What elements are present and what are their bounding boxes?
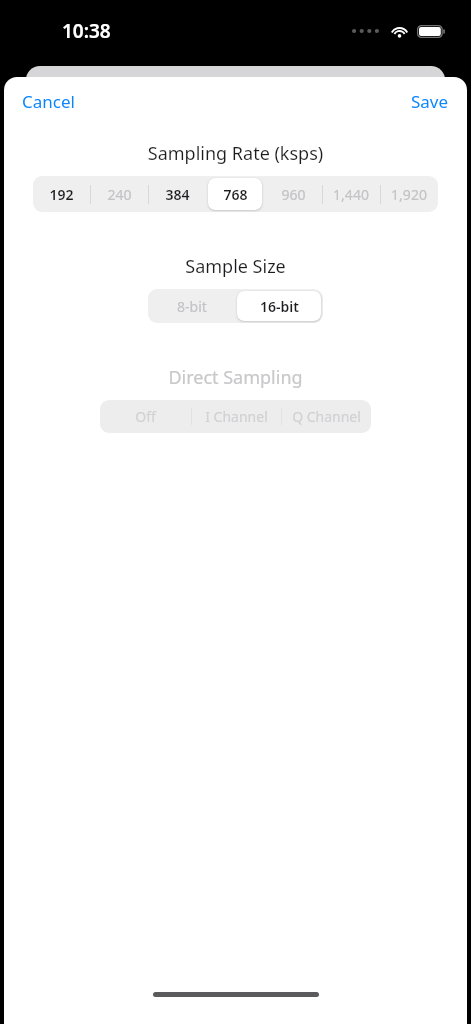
staticText: 960 <box>281 185 306 204</box>
button[interactable]: 384 <box>148 176 206 212</box>
staticText: 10:38 <box>62 18 111 44</box>
button: Q Channel <box>281 400 371 433</box>
staticText: 240 <box>107 185 132 204</box>
button: 1,440 <box>322 176 380 212</box>
staticText: Direct Sampling <box>4 365 467 390</box>
staticText: 1,440 <box>333 185 369 204</box>
staticText: 1,920 <box>391 185 427 204</box>
button[interactable]: Save <box>393 82 467 121</box>
staticText: Save <box>411 90 449 113</box>
staticText: 192 <box>49 185 74 204</box>
staticText: 768 <box>223 185 248 204</box>
button[interactable]: 768 <box>206 176 264 212</box>
staticText: I Channel <box>205 407 268 426</box>
button: 240 <box>90 176 148 212</box>
button: 8-bit <box>148 289 235 323</box>
button[interactable]: Cancel <box>4 82 93 121</box>
staticText: Sampling Rate (ksps) <box>4 141 467 166</box>
button[interactable]: 192 <box>33 176 90 212</box>
staticText: Q Channel <box>292 407 361 426</box>
button: Off <box>100 400 191 433</box>
staticText: Sample Size <box>4 254 467 279</box>
button[interactable]: 16-bit <box>235 289 323 323</box>
staticText: 8-bit <box>177 297 207 316</box>
staticText: Off <box>135 407 156 426</box>
button: I Channel <box>191 400 281 433</box>
staticText: 16-bit <box>260 297 299 316</box>
button: 1,920 <box>380 176 438 212</box>
button: 960 <box>264 176 322 212</box>
staticText: 384 <box>165 185 190 204</box>
staticText: Cancel <box>22 90 75 113</box>
